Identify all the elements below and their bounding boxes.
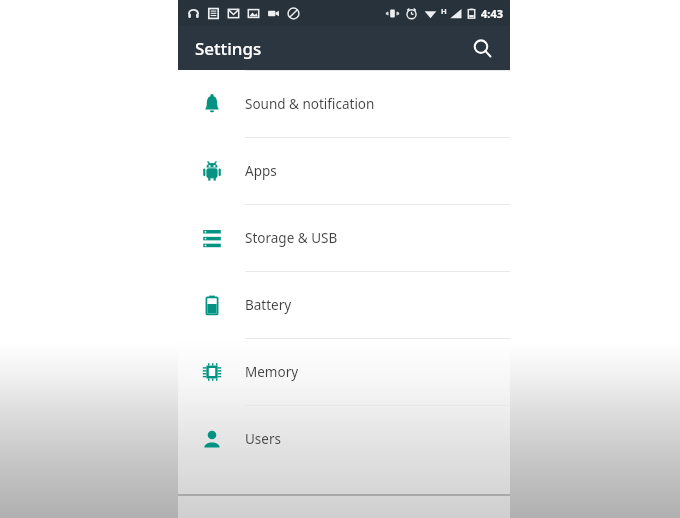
button[interactable]: Storage & USB (178, 205, 510, 271)
button[interactable]: Sound & notification (178, 71, 510, 137)
staticText: Battery (245, 296, 292, 314)
staticText: Settings (195, 37, 262, 60)
button[interactable]: Memory (178, 339, 510, 405)
staticText: Users (245, 430, 281, 448)
staticText: Memory (245, 363, 299, 381)
button[interactable]: Apps (178, 138, 510, 204)
button[interactable]: Search (464, 30, 500, 66)
button[interactable]: Users (178, 406, 510, 472)
staticText: Apps (245, 162, 277, 180)
staticText: 4:43 (481, 6, 503, 21)
staticText: H (441, 6, 447, 16)
staticText: Storage & USB (245, 229, 338, 247)
staticText: Sound & notification (245, 95, 375, 113)
button[interactable]: Battery (178, 272, 510, 338)
